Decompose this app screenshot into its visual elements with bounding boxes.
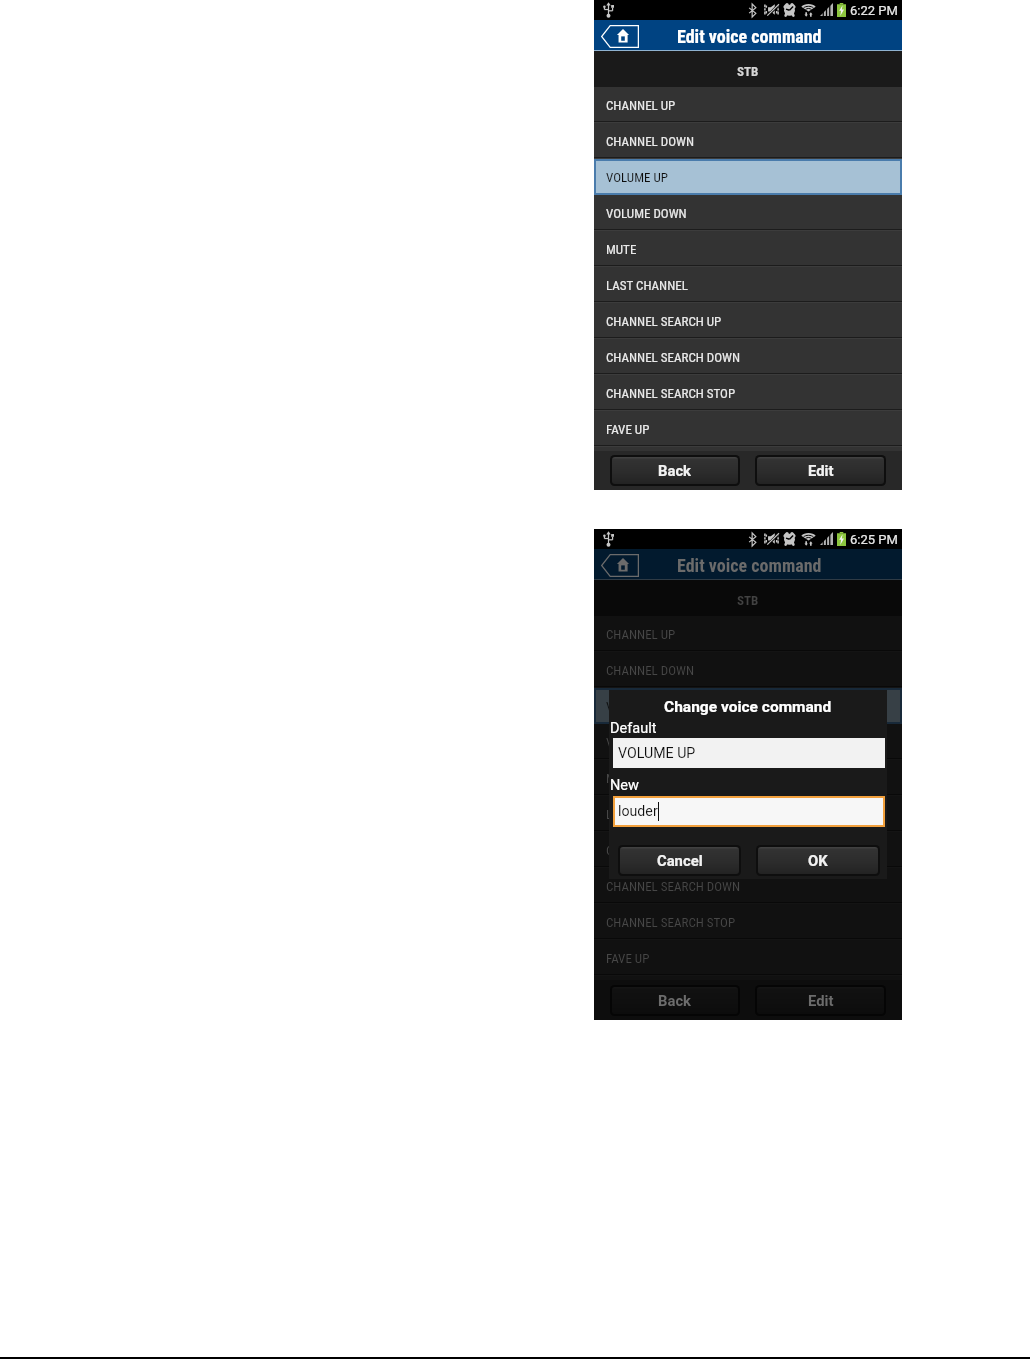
staticText: Back (658, 462, 692, 479)
staticText: CHANNEL UP (606, 627, 676, 642)
button[interactable]: Back (610, 455, 740, 486)
staticText: FAVE UP (606, 422, 650, 437)
staticText: CHANNEL SEARCH UP (606, 314, 722, 329)
staticText: VOLUME UP (618, 745, 696, 762)
button[interactable]: CHANNEL SEARCH DOWN (594, 339, 902, 375)
staticText: OK (808, 852, 828, 869)
staticText: VOLUME DOWN (606, 735, 687, 750)
staticText: CHANNEL UP (606, 98, 676, 113)
staticText: Cancel (657, 852, 703, 869)
button[interactable]: FAVE UP (594, 940, 902, 976)
button[interactable]: VOLUME DOWN (594, 195, 902, 231)
staticText: Default (610, 720, 657, 737)
button[interactable]: CHANNEL SEARCH UP (594, 303, 902, 339)
staticText: STB (737, 64, 759, 79)
staticText: LAST CHANNEL (606, 278, 688, 293)
button[interactable]: Edit (755, 985, 886, 1016)
staticText: MUTE (606, 771, 637, 786)
button[interactable]: louder (613, 796, 885, 827)
button[interactable]: OK (756, 845, 880, 876)
staticText: Edit voice command (677, 26, 822, 47)
button[interactable]: Back (610, 985, 740, 1016)
staticText: 6:22 PM (850, 3, 898, 18)
staticText: MUTE (606, 242, 637, 257)
staticText: Edit (808, 462, 834, 479)
button[interactable]: CHANNEL SEARCH DOWN (594, 868, 902, 904)
button[interactable]: LAST CHANNEL (594, 796, 902, 832)
button[interactable]: VOLUME DOWN (594, 724, 902, 760)
staticText: Edit (808, 992, 834, 1009)
button[interactable]: CHANNEL DOWN (594, 652, 902, 688)
staticText: VOLUME UP (606, 699, 668, 714)
button[interactable]: VOLUME UP (594, 159, 902, 195)
button[interactable]: Home (601, 554, 639, 577)
button[interactable]: FAVE UP (594, 411, 902, 447)
staticText: LAST CHANNEL (606, 807, 688, 822)
button[interactable]: CHANNEL DOWN (594, 123, 902, 159)
button[interactable]: CHANNEL SEARCH UP (594, 832, 902, 868)
button[interactable]: Edit (755, 455, 886, 486)
button[interactable]: LAST CHANNEL (594, 267, 902, 303)
staticText: louder (618, 803, 658, 820)
staticText: CHANNEL SEARCH DOWN (606, 350, 740, 365)
staticText: 6:25 PM (850, 532, 898, 547)
button[interactable]: Home (601, 25, 639, 48)
staticText: New (610, 777, 639, 794)
staticText: CHANNEL SEARCH DOWN (606, 879, 740, 894)
button[interactable]: CHANNEL UP (594, 87, 902, 123)
button[interactable]: MUTE (594, 231, 902, 267)
button[interactable]: CHANNEL SEARCH STOP (594, 375, 902, 411)
button[interactable]: CHANNEL SEARCH STOP (594, 904, 902, 940)
staticText: Change voice command (664, 698, 832, 716)
staticText: CHANNEL DOWN (606, 134, 694, 149)
button[interactable]: VOLUME UP (594, 688, 902, 724)
staticText: VOLUME DOWN (606, 206, 687, 221)
button[interactable]: CHANNEL UP (594, 616, 902, 652)
staticText: Edit voice command (677, 555, 822, 576)
staticText: VOLUME UP (606, 170, 668, 185)
staticText: CHANNEL SEARCH UP (606, 843, 722, 858)
staticText: CHANNEL SEARCH STOP (606, 386, 736, 401)
button[interactable]: MUTE (594, 760, 902, 796)
staticText: STB (737, 593, 759, 608)
staticText: CHANNEL SEARCH STOP (606, 915, 736, 930)
staticText: CHANNEL DOWN (606, 663, 694, 678)
button[interactable]: Cancel (618, 845, 741, 876)
button[interactable]: VOLUME UP (613, 738, 885, 768)
staticText: Back (658, 992, 692, 1009)
staticText: FAVE UP (606, 951, 650, 966)
